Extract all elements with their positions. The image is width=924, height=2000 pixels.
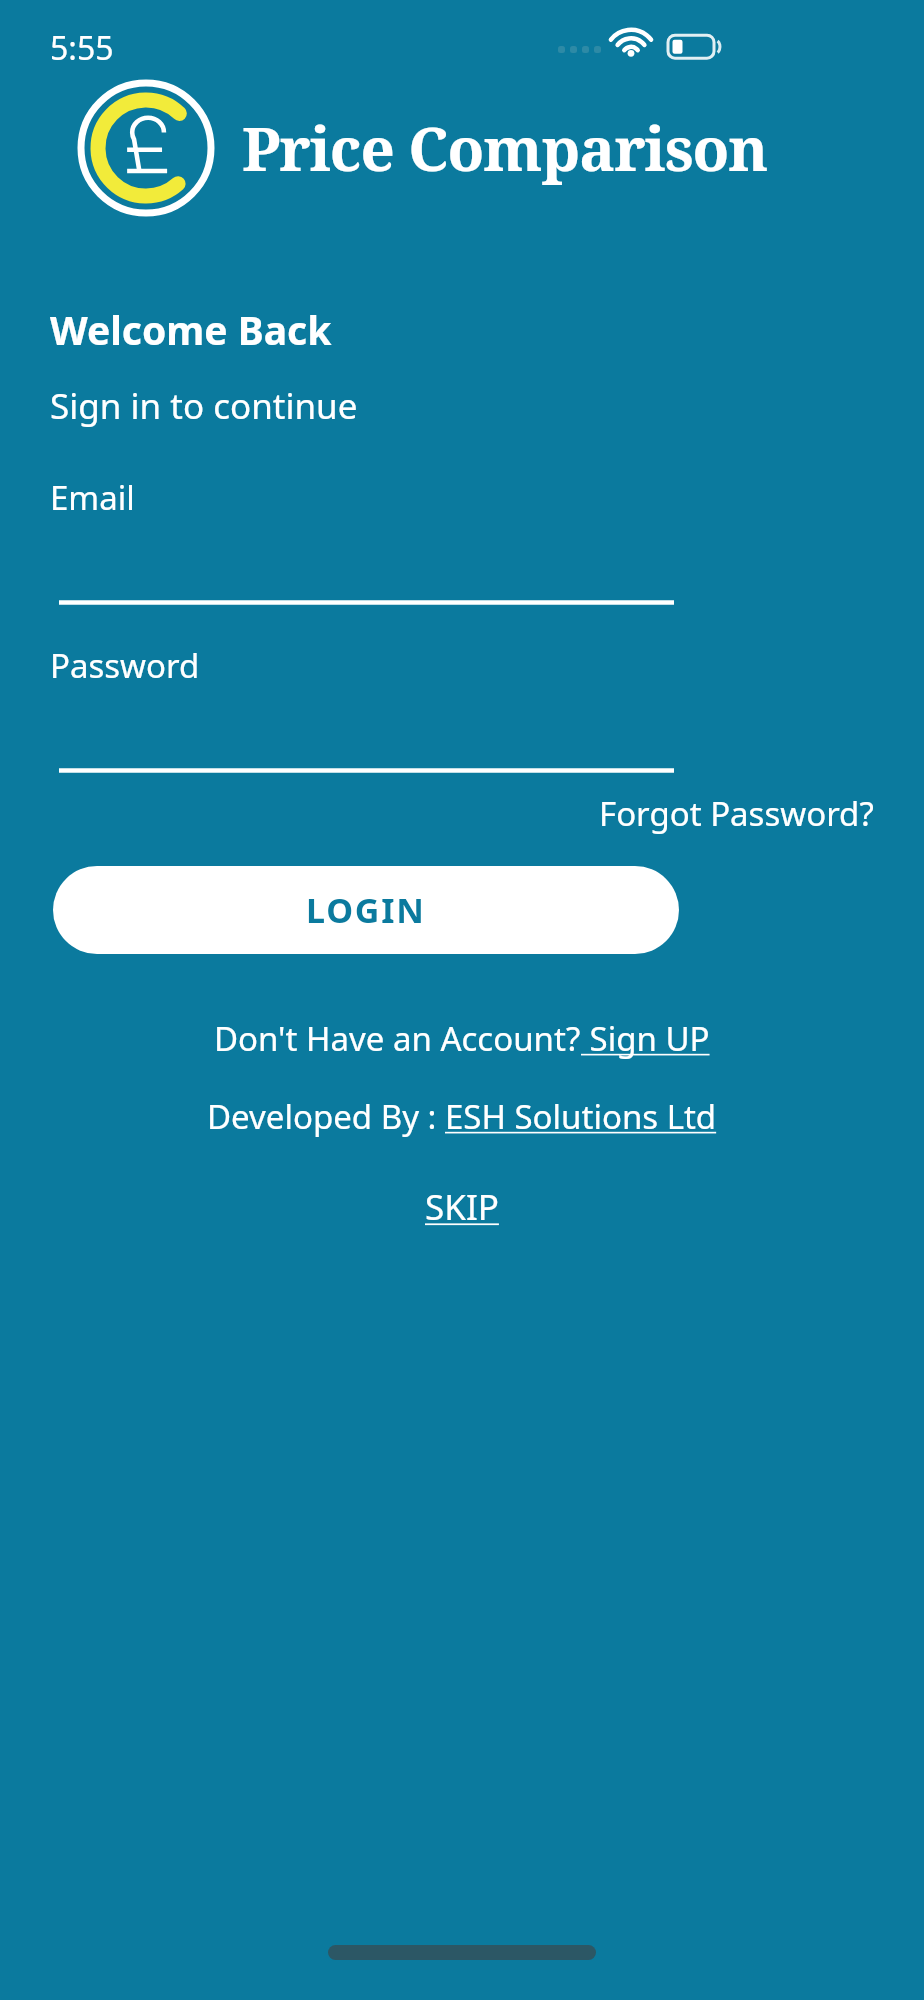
staticText: LOGIN — [306, 887, 426, 933]
button[interactable]: Sign UP — [581, 1016, 710, 1061]
staticText: SKIP — [425, 1183, 499, 1231]
staticText: Forgot Password? — [599, 791, 874, 836]
staticText: 5:55 — [50, 26, 114, 70]
staticText: Password — [50, 643, 200, 688]
staticText: Email — [50, 475, 135, 520]
button[interactable]: Email — [50, 475, 674, 605]
staticText: Don't Have an Account? — [214, 1016, 581, 1061]
button[interactable]: ESH Solutions Ltd — [445, 1094, 717, 1139]
staticText: Developed By : — [207, 1094, 445, 1139]
button[interactable]: LOGIN — [53, 866, 679, 954]
staticText: Sign UP — [581, 1016, 710, 1061]
button[interactable]: Forgot Password? — [595, 783, 878, 844]
button[interactable]: SKIP — [415, 1177, 509, 1237]
other: Status icons — [556, 28, 706, 64]
staticText: ESH Solutions Ltd — [445, 1094, 717, 1139]
button[interactable]: Password — [50, 643, 674, 773]
staticText: Price Comparison — [242, 107, 768, 189]
staticText: Welcome Back — [50, 303, 332, 356]
staticText: Sign in to continue — [50, 382, 358, 430]
